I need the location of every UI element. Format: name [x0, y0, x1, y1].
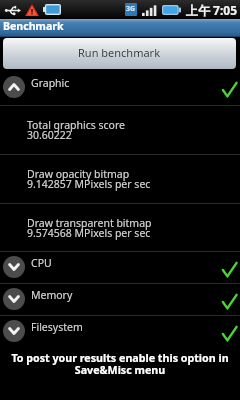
- staticText: Draw opacity bitmap 9.142857 MPixels per…: [27, 167, 151, 191]
- button[interactable]: Run benchmark: [3, 38, 236, 69]
- staticText: Graphic: [31, 76, 70, 90]
- button[interactable]: CPU: [0, 252, 240, 283]
- button[interactable]: Memory: [0, 284, 240, 315]
- staticText: CPU: [31, 256, 52, 270]
- button[interactable]: Graphic: [0, 70, 240, 105]
- button[interactable]: Draw opacity bitmap 9.142857 MPixels per…: [0, 155, 240, 203]
- staticText: To post your results enable this option …: [0, 351, 240, 378]
- button[interactable]: Filesystem: [0, 316, 240, 347]
- staticText: Memory: [31, 288, 73, 302]
- button[interactable]: Draw transparent bitmap 9.574568 MPixels…: [0, 204, 240, 251]
- staticText: Total graphics score 30.60222: [27, 118, 125, 142]
- staticText: Run benchmark: [78, 45, 161, 60]
- staticText: Filesystem: [31, 320, 83, 334]
- staticText: Draw transparent bitmap 9.574568 MPixels…: [27, 216, 152, 240]
- button[interactable]: Total graphics score 30.60222: [0, 106, 240, 154]
- staticText: 上午 7:05: [186, 2, 238, 18]
- staticText: 3G: [126, 4, 136, 14]
- staticText: Benchmark: [3, 19, 64, 33]
